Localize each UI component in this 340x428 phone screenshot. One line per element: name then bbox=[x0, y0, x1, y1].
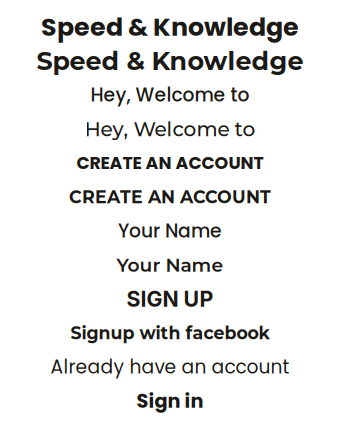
staticText: CREATE AN ACCOUNT bbox=[69, 186, 271, 207]
staticText: Signup with facebook bbox=[70, 322, 269, 343]
staticText: Speed & Knowledge bbox=[41, 9, 299, 45]
staticText: CREATE AN ACCOUNT bbox=[76, 151, 263, 175]
staticText: Already have an account bbox=[50, 354, 289, 380]
staticText: Your Name bbox=[118, 218, 222, 244]
staticText: Hey, Welcome to bbox=[84, 117, 255, 141]
staticText: Hey, Welcome to bbox=[90, 82, 249, 108]
staticText: Your Name bbox=[116, 254, 223, 276]
staticText: Sign in bbox=[136, 387, 203, 415]
staticText: Speed & Knowledge bbox=[36, 46, 303, 76]
staticText: SIGN UP bbox=[126, 286, 213, 312]
